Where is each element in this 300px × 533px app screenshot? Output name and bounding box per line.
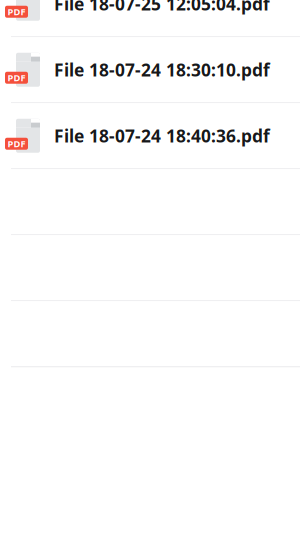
staticText: File 18-07-24 18:40:36.pdf bbox=[54, 124, 270, 147]
staticText: PDF bbox=[7, 138, 25, 150]
button[interactable]: PDF bbox=[0, 0, 300, 37]
button[interactable]: PDF bbox=[0, 37, 300, 103]
staticText: File 18-07-24 18:30:10.pdf bbox=[54, 58, 270, 81]
button[interactable]: PDF bbox=[0, 103, 300, 169]
staticText: PDF bbox=[7, 6, 25, 18]
staticText: File 18-07-25 12:05:04.pdf bbox=[54, 0, 270, 15]
staticText: PDF bbox=[7, 72, 25, 84]
